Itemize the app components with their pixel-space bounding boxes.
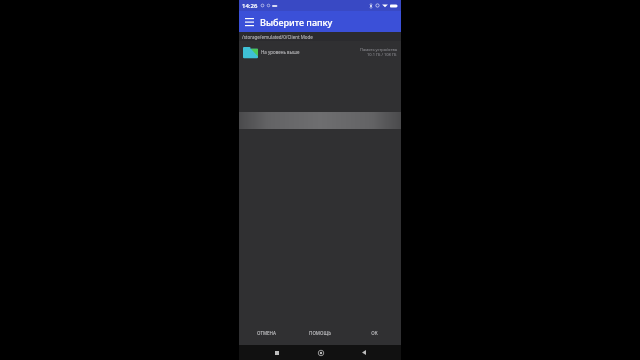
button[interactable]: Home [314, 346, 327, 359]
staticText: Память устройства [360, 47, 397, 52]
staticText: /storage/emulated/0/Client Mode [242, 34, 313, 40]
button[interactable]: Back [357, 346, 370, 359]
staticText: ОК [371, 330, 378, 336]
staticText: 14:26 [242, 2, 258, 10]
staticText: 10.1 ГБ / 108 ГБ [367, 52, 397, 57]
staticText: Выберите папку [260, 16, 333, 28]
staticText: На уровень выше [261, 49, 300, 55]
staticText: ПОМОЩЬ [309, 330, 331, 336]
button[interactable]: Recent apps [270, 346, 283, 359]
button[interactable] [239, 112, 401, 129]
staticText: ОТМЕНА [257, 330, 276, 336]
button[interactable]: Open navigation menu [239, 11, 260, 32]
button[interactable]: На уровень выше [239, 41, 401, 63]
button[interactable]: /storage/emulated/0/Client Mode [239, 32, 401, 41]
button[interactable]: ПОМОЩЬ [293, 326, 347, 340]
button[interactable]: ОТМЕНА [239, 326, 293, 340]
button[interactable]: ОК [347, 326, 401, 340]
